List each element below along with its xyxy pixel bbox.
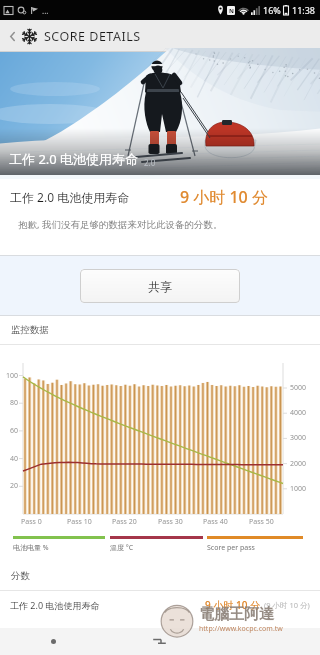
staticText: 温度 °C: [110, 543, 134, 553]
staticText: 3000: [290, 433, 307, 443]
button[interactable]: Score per pass: [207, 536, 303, 553]
staticText: 监控数据: [11, 324, 49, 336]
staticText: 工作 2.0 电池使用寿命: [9, 150, 139, 168]
button[interactable]: 工作 2.0 电池使用寿命: [10, 591, 310, 619]
staticText: SCORE DETAILS: [44, 28, 141, 45]
staticText: 电池电量 %: [13, 543, 49, 553]
staticText: Pass 50: [249, 517, 274, 527]
staticText: 2000: [290, 459, 307, 469]
button[interactable]: Back: [213, 628, 320, 655]
staticText: 5000: [290, 383, 307, 393]
staticText: 工作 2.0 电池使用寿命: [10, 189, 130, 205]
staticText: (9 小时 10 分): [264, 600, 310, 610]
staticText: Pass 40: [203, 517, 228, 527]
staticText: 16%: [263, 4, 281, 16]
staticText: Pass 30: [158, 517, 183, 527]
button[interactable]: 温度 °C: [110, 536, 203, 553]
staticText: Pass 10: [67, 517, 92, 527]
staticText: 100: [6, 371, 19, 381]
staticText: Pass 20: [112, 517, 137, 527]
button[interactable]: Recents: [0, 628, 106, 655]
button[interactable]: 电池电量 %: [13, 536, 105, 553]
staticText: 抱歉, 我们没有足够的数据来对比此设备的分数。: [18, 218, 223, 231]
staticText: 9 小时 10 分: [205, 598, 260, 612]
staticText: 11:38: [292, 4, 316, 16]
button[interactable]: 共享: [80, 269, 240, 303]
staticText: 共享: [148, 279, 172, 294]
button[interactable]: Home: [106, 628, 213, 655]
staticText: ...: [42, 5, 49, 16]
staticText: 80: [10, 398, 19, 408]
staticText: 1000: [290, 484, 307, 494]
staticText: 工作 2.0 电池使用寿命: [10, 599, 100, 611]
staticText: 60: [10, 426, 19, 436]
staticText: 20: [10, 481, 19, 491]
staticText: Pass 0: [21, 517, 42, 527]
staticText: http://www.kocpc.com.tw: [199, 624, 283, 634]
staticText: 4000: [290, 408, 307, 418]
staticText: Score per pass: [207, 543, 255, 553]
staticText: 2.0: [144, 157, 156, 168]
staticText: N: [229, 7, 234, 15]
staticText: 40: [10, 454, 19, 464]
staticText: 9 小时 10 分: [180, 186, 268, 208]
staticText: 分数: [11, 570, 30, 582]
button[interactable]: Back: [3, 27, 21, 45]
staticText: 電腦王阿達: [199, 605, 274, 624]
